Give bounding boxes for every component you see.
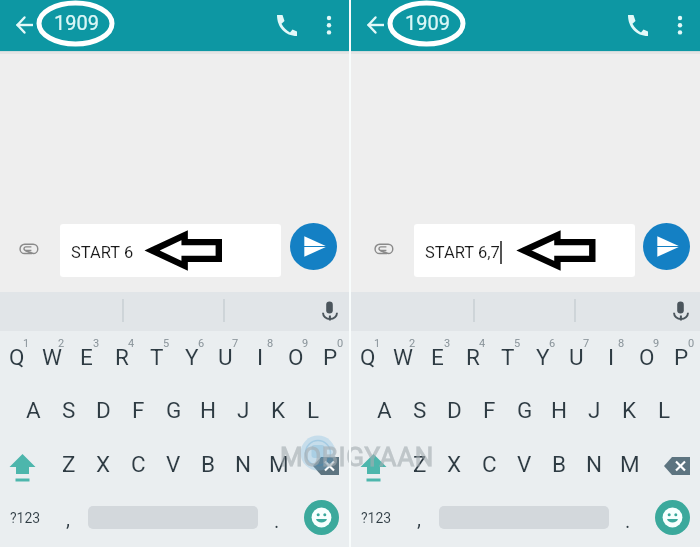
button[interactable]: More options — [316, 12, 342, 38]
button[interactable]: H — [192, 385, 227, 439]
button[interactable]: Emoji — [304, 500, 339, 535]
button[interactable]: N — [227, 439, 262, 493]
button[interactable]: C — [473, 439, 508, 493]
button[interactable]: C — [122, 439, 157, 493]
button[interactable]: , — [401, 493, 437, 547]
button[interactable]: J — [578, 385, 613, 439]
staticText: T — [150, 344, 164, 370]
button[interactable]: 8 — [244, 331, 279, 385]
staticText: O — [288, 344, 304, 370]
staticText: I — [608, 344, 615, 370]
button[interactable]: S — [403, 385, 438, 439]
button[interactable]: 1 — [351, 331, 386, 385]
button[interactable]: ?123 — [351, 493, 401, 547]
button[interactable]: Z — [52, 439, 87, 493]
button[interactable]: Back — [361, 10, 391, 40]
button[interactable]: A — [17, 385, 52, 439]
button[interactable]: K — [262, 385, 297, 439]
button[interactable]: . — [613, 493, 643, 547]
staticText: 2 — [58, 337, 65, 350]
staticText: E — [431, 344, 444, 370]
staticText: S — [62, 397, 76, 423]
button[interactable]: More options — [667, 12, 693, 38]
staticText: Z — [413, 451, 427, 477]
button[interactable]: Send — [290, 223, 337, 270]
button[interactable]: M — [613, 439, 648, 493]
button[interactable]: 0 — [314, 331, 349, 385]
button[interactable]: F — [122, 385, 157, 439]
button[interactable]: Z — [403, 439, 438, 493]
button[interactable]: V — [157, 439, 192, 493]
button[interactable]: 9 — [279, 331, 314, 385]
staticText: F — [483, 397, 496, 423]
button[interactable]: Attach — [17, 238, 41, 262]
button[interactable]: L — [648, 385, 683, 439]
button[interactable]: F — [473, 385, 508, 439]
button[interactable]: G — [157, 385, 192, 439]
button[interactable]: A — [368, 385, 403, 439]
button[interactable]: D — [438, 385, 473, 439]
button[interactable]: , — [50, 493, 86, 547]
button[interactable]: Voice input — [669, 299, 693, 323]
staticText: . — [625, 509, 631, 532]
button[interactable]: N — [578, 439, 613, 493]
button[interactable]: . — [262, 493, 292, 547]
button[interactable]: 8 — [595, 331, 630, 385]
button[interactable]: 5 — [140, 331, 175, 385]
button[interactable]: Backspace — [654, 439, 700, 493]
button[interactable]: Emoji — [655, 500, 690, 535]
button[interactable]: L — [297, 385, 332, 439]
button[interactable]: Back — [10, 10, 40, 40]
button[interactable]: 7 — [560, 331, 595, 385]
button[interactable]: V — [508, 439, 543, 493]
button[interactable]: D — [87, 385, 122, 439]
button[interactable]: 2 — [386, 331, 421, 385]
button[interactable]: 2 — [35, 331, 70, 385]
button[interactable]: 4 — [105, 331, 140, 385]
button[interactable]: START 6 — [60, 224, 281, 277]
staticText: J — [588, 397, 601, 423]
staticText: M — [620, 451, 640, 477]
button[interactable]: Call — [623, 12, 649, 38]
staticText: W — [393, 344, 413, 370]
button[interactable]: Call — [272, 12, 298, 38]
button[interactable]: 3 — [70, 331, 105, 385]
button[interactable]: H — [543, 385, 578, 439]
button[interactable]: M — [262, 439, 297, 493]
staticText: Q — [360, 344, 376, 370]
button[interactable]: 6 — [526, 331, 561, 385]
button[interactable]: 1909 — [54, 11, 99, 34]
button[interactable]: B — [543, 439, 578, 493]
button[interactable]: 0 — [665, 331, 700, 385]
button[interactable]: 4 — [456, 331, 491, 385]
button[interactable]: 5 — [491, 331, 526, 385]
staticText: V — [517, 451, 532, 477]
staticText: 3 — [93, 337, 100, 350]
button[interactable]: 7 — [209, 331, 244, 385]
staticText: G — [517, 397, 533, 423]
button[interactable]: X — [87, 439, 122, 493]
button[interactable]: 3 — [421, 331, 456, 385]
button[interactable]: 9 — [630, 331, 665, 385]
button[interactable]: B — [192, 439, 227, 493]
button[interactable]: X — [438, 439, 473, 493]
button[interactable]: Shift — [0, 439, 45, 493]
button[interactable]: 1909 — [405, 11, 450, 34]
button[interactable]: J — [227, 385, 262, 439]
staticText: R — [466, 344, 480, 370]
button[interactable]: 1 — [0, 331, 35, 385]
button[interactable]: Backspace — [303, 439, 349, 493]
button[interactable]: K — [613, 385, 648, 439]
button[interactable]: S — [52, 385, 87, 439]
button[interactable]: ?123 — [0, 493, 50, 547]
button[interactable]: START 6,7 — [414, 224, 635, 277]
button[interactable]: Shift — [351, 439, 396, 493]
button[interactable]: G — [508, 385, 543, 439]
staticText: K — [622, 397, 637, 423]
button[interactable]: Send — [643, 223, 690, 270]
button[interactable]: Voice input — [318, 299, 342, 323]
button[interactable]: Attach — [372, 238, 396, 262]
button[interactable]: 6 — [175, 331, 210, 385]
